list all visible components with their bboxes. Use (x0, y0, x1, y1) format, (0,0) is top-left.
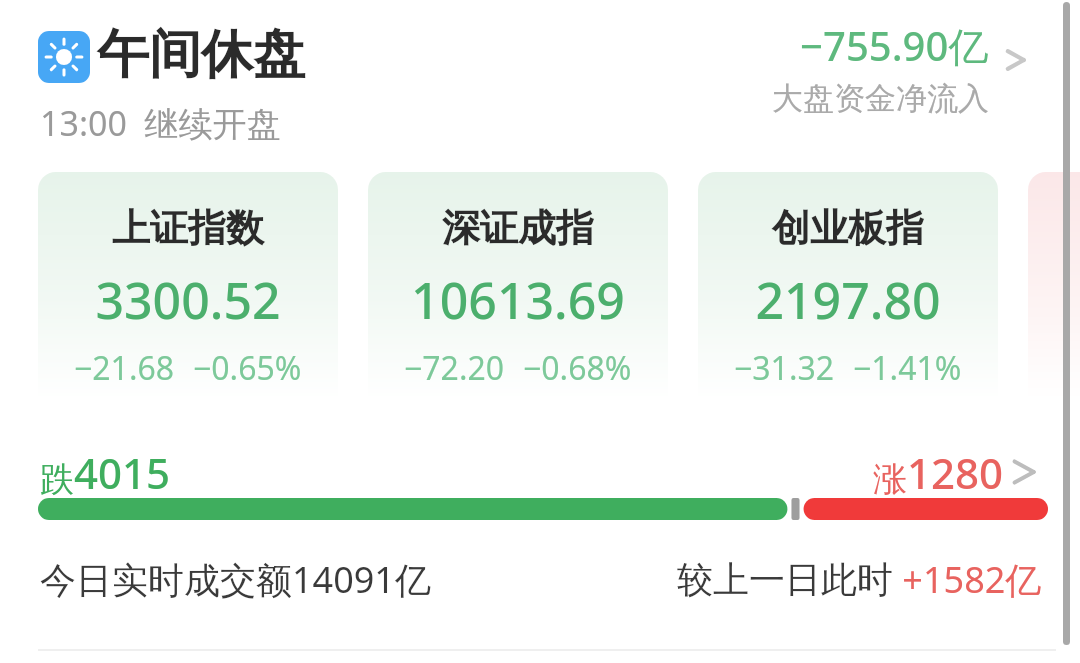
button[interactable]: −755.90亿 (700, 18, 1045, 118)
button[interactable]: 创业板指 (698, 172, 998, 400)
staticText: −0.65% (193, 346, 302, 390)
button[interactable]: 深证成指 (368, 172, 668, 400)
staticText: 上证指数 (112, 204, 264, 252)
staticText: +1582亿 (893, 555, 1042, 604)
button[interactable]: 上证指数 (38, 172, 338, 400)
staticText: −21.68 (74, 346, 175, 390)
staticText: 涨 (873, 458, 907, 501)
button[interactable] (1028, 172, 1080, 400)
staticText: −1.41% (853, 346, 962, 390)
staticText: 2197.80 (755, 266, 941, 334)
staticText: 3300.52 (95, 266, 281, 334)
staticText: −755.90亿 (800, 18, 989, 73)
button[interactable]: 跌 (40, 442, 1052, 502)
staticText: −31.32 (734, 346, 835, 390)
staticText: 深证成指 (442, 204, 594, 252)
staticText: 4015 (74, 444, 171, 501)
staticText: 较上一日此时 (677, 557, 893, 602)
staticText: −0.68% (523, 346, 632, 390)
staticText: 午间休盘 (97, 22, 305, 88)
staticText: 10613.69 (411, 266, 625, 334)
staticText: 13:00 继续开盘 (40, 100, 281, 146)
staticText: 跌 (40, 458, 74, 501)
staticText: 1280 (907, 444, 1004, 501)
staticText: −72.20 (404, 346, 505, 390)
staticText: 创业板指 (772, 204, 924, 252)
staticText: 今日实时成交额14091亿 (40, 555, 431, 604)
other: Midday market status (38, 31, 90, 83)
staticText: 大盘资金净流入 (772, 79, 989, 118)
